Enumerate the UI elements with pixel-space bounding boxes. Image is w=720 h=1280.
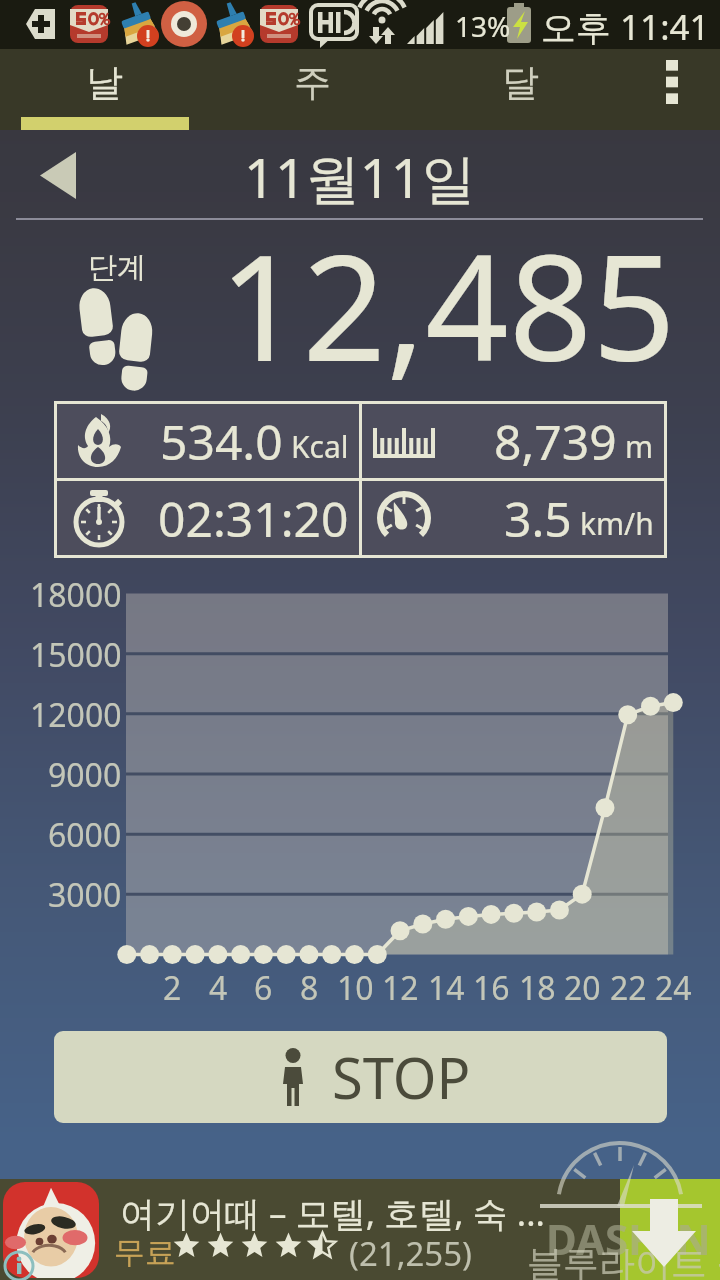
staticText: 16: [473, 966, 510, 1010]
button[interactable]: More options: [624, 49, 720, 115]
staticText: 18: [519, 966, 556, 1010]
button[interactable]: 3.5: [362, 481, 664, 555]
button[interactable]: 534.0: [57, 404, 359, 478]
staticText: 15000: [30, 633, 122, 677]
staticText: 20: [564, 966, 601, 1010]
staticText: 날: [86, 59, 123, 106]
staticText: m: [625, 426, 654, 467]
staticText: 8,739: [494, 409, 617, 474]
staticText: 단계: [88, 249, 146, 286]
staticText: 3000: [48, 873, 122, 917]
staticText: DASHIN: [546, 1210, 711, 1267]
staticText: 블루라이트 필터: [527, 1238, 720, 1280]
button[interactable]: Previous day: [24, 141, 92, 209]
staticText: 12000: [30, 693, 122, 737]
staticText: STOP: [332, 1039, 471, 1115]
button[interactable]: 8,739: [362, 404, 664, 478]
button[interactable]: 02:31:20: [57, 481, 359, 555]
staticText: 4: [209, 966, 228, 1010]
staticText: 24: [655, 966, 692, 1010]
staticText: 14: [428, 966, 465, 1010]
staticText: 달: [502, 59, 539, 106]
staticText: (21,255): [349, 1231, 473, 1276]
button[interactable]: 달: [416, 49, 624, 115]
staticText: 6000: [48, 813, 122, 857]
staticText: 여기어때 – 모텔, 호텔, 숙 ...: [120, 1189, 545, 1237]
staticText: 주: [294, 59, 331, 106]
staticText: 22: [610, 966, 647, 1010]
staticText: km/h: [580, 503, 654, 544]
button[interactable]: DASHIN: [0, 1179, 720, 1280]
staticText: 무료: [114, 1233, 176, 1272]
staticText: 9000: [48, 753, 122, 797]
button[interactable]: 날: [0, 49, 208, 115]
staticText: 3.5: [504, 486, 572, 551]
staticText: 12,485: [219, 205, 676, 404]
button[interactable]: 주: [208, 49, 416, 115]
staticText: 8: [300, 966, 319, 1010]
staticText: 2: [163, 966, 182, 1010]
staticText: 11월11일: [244, 140, 476, 214]
staticText: 10: [337, 966, 374, 1010]
staticText: 12: [382, 966, 419, 1010]
staticText: 6: [254, 966, 273, 1010]
staticText: Kcal: [291, 426, 349, 467]
staticText: 02:31:20: [158, 486, 349, 551]
staticText: 13%: [455, 7, 511, 45]
staticText: 오후 11:41: [541, 3, 710, 51]
staticText: 18000: [30, 573, 122, 617]
button[interactable]: STOP: [54, 1031, 667, 1123]
staticText: 534.0: [160, 409, 283, 474]
